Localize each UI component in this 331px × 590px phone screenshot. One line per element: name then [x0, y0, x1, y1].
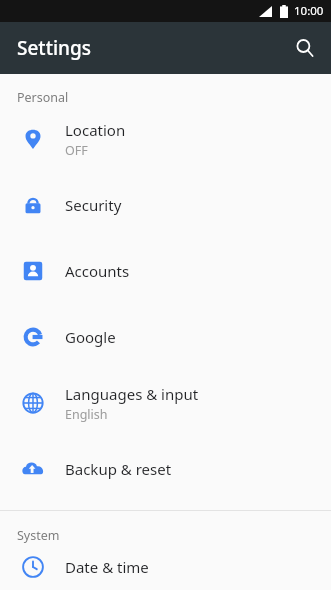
staticText: Languages & input — [65, 384, 199, 404]
staticText: 10:00 — [294, 3, 324, 19]
button[interactable]: Location — [0, 106, 331, 172]
staticText: Settings — [17, 35, 91, 61]
button[interactable]: Accounts — [0, 238, 331, 304]
staticText: Location — [65, 120, 126, 140]
button[interactable]: Backup & reset — [0, 436, 331, 502]
staticText: Backup & reset — [65, 459, 172, 479]
button[interactable]: Date & time — [0, 544, 331, 590]
staticText: OFF — [65, 142, 88, 159]
button[interactable]: Security — [0, 172, 331, 238]
staticText: Google — [65, 327, 116, 347]
staticText: Accounts — [65, 261, 130, 281]
staticText: System — [17, 527, 60, 544]
button[interactable]: Search — [285, 28, 325, 68]
button[interactable]: Languages & input — [0, 370, 331, 436]
staticText: Security — [65, 195, 122, 215]
staticText: Date & time — [65, 557, 149, 577]
staticText: Personal — [17, 89, 69, 106]
staticText: English — [65, 406, 108, 423]
button[interactable]: Google — [0, 304, 331, 370]
